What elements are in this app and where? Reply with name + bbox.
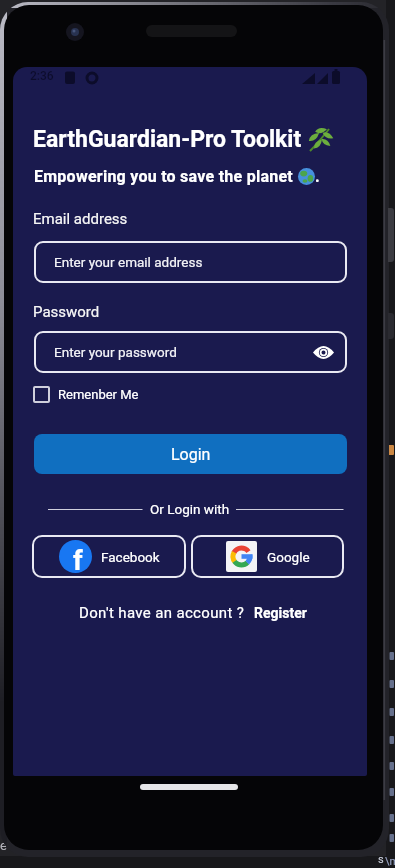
button[interactable]: Google <box>191 535 344 578</box>
button[interactable]: Login <box>34 434 347 474</box>
staticText: Don't have an account ? <box>79 604 245 622</box>
staticText: Email address <box>33 210 128 228</box>
staticText: \m <box>385 855 395 868</box>
staticText: Empowering you to save the planet <box>34 167 298 186</box>
staticText: Enter your password <box>54 344 177 360</box>
staticText: s <box>378 853 384 866</box>
staticText: Facebook <box>101 549 160 565</box>
staticText: Enter your email address <box>54 254 203 270</box>
staticText: Login <box>171 445 211 464</box>
button[interactable]: Register <box>254 605 307 621</box>
staticText: . <box>315 167 320 186</box>
staticText: f <box>73 545 83 573</box>
button[interactable]: f <box>32 535 186 578</box>
staticText: Remenber Me <box>58 387 139 402</box>
staticText: 2:36 <box>30 69 54 83</box>
button[interactable]: Remenber Me <box>33 386 139 403</box>
staticText: e <box>0 838 7 853</box>
button[interactable]: Enter your email address <box>34 241 347 283</box>
staticText: Or Login with <box>150 501 230 517</box>
staticText: Google <box>267 549 310 565</box>
staticText: EarthGuardian-Pro Toolkit <box>33 126 307 153</box>
staticText: Password <box>33 303 100 321</box>
button[interactable] <box>313 346 334 359</box>
button[interactable]: Enter your password <box>34 331 347 373</box>
